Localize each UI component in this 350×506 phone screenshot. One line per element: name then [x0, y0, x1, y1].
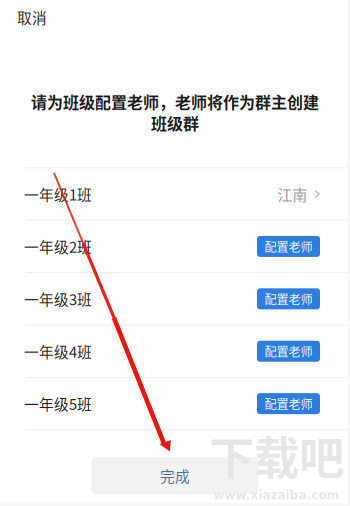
- button[interactable]: 完成: [91, 457, 258, 494]
- staticText: 一年级3班: [24, 288, 92, 309]
- button[interactable]: 一年级3班: [0, 273, 350, 324]
- button[interactable]: 一年级5班: [0, 378, 350, 429]
- staticText: 配置老师: [264, 290, 312, 308]
- staticText: 江南: [277, 183, 307, 205]
- button[interactable]: 一年级1班: [0, 168, 350, 220]
- button[interactable]: 一年级4班: [0, 325, 350, 377]
- staticText: 配置老师: [264, 342, 312, 360]
- staticText: 一年级2班: [24, 236, 92, 257]
- button[interactable]: 一年级2班: [0, 221, 350, 272]
- staticText: 完成: [160, 465, 190, 486]
- staticText: 请为班级配置老师，老师将作为群主创建: [31, 90, 319, 113]
- staticText: 一年级4班: [24, 341, 92, 362]
- staticText: www.xiazaiba.com: [213, 488, 339, 502]
- staticText: 配置老师: [264, 238, 312, 255]
- staticText: 一年级1班: [24, 183, 92, 205]
- staticText: 班级群: [151, 111, 199, 134]
- staticText: 下载吧: [209, 422, 344, 488]
- button[interactable]: 取消: [0, 0, 64, 34]
- staticText: 一年级5班: [24, 393, 92, 414]
- staticText: 取消: [17, 6, 47, 28]
- staticText: 配置老师: [264, 395, 312, 412]
